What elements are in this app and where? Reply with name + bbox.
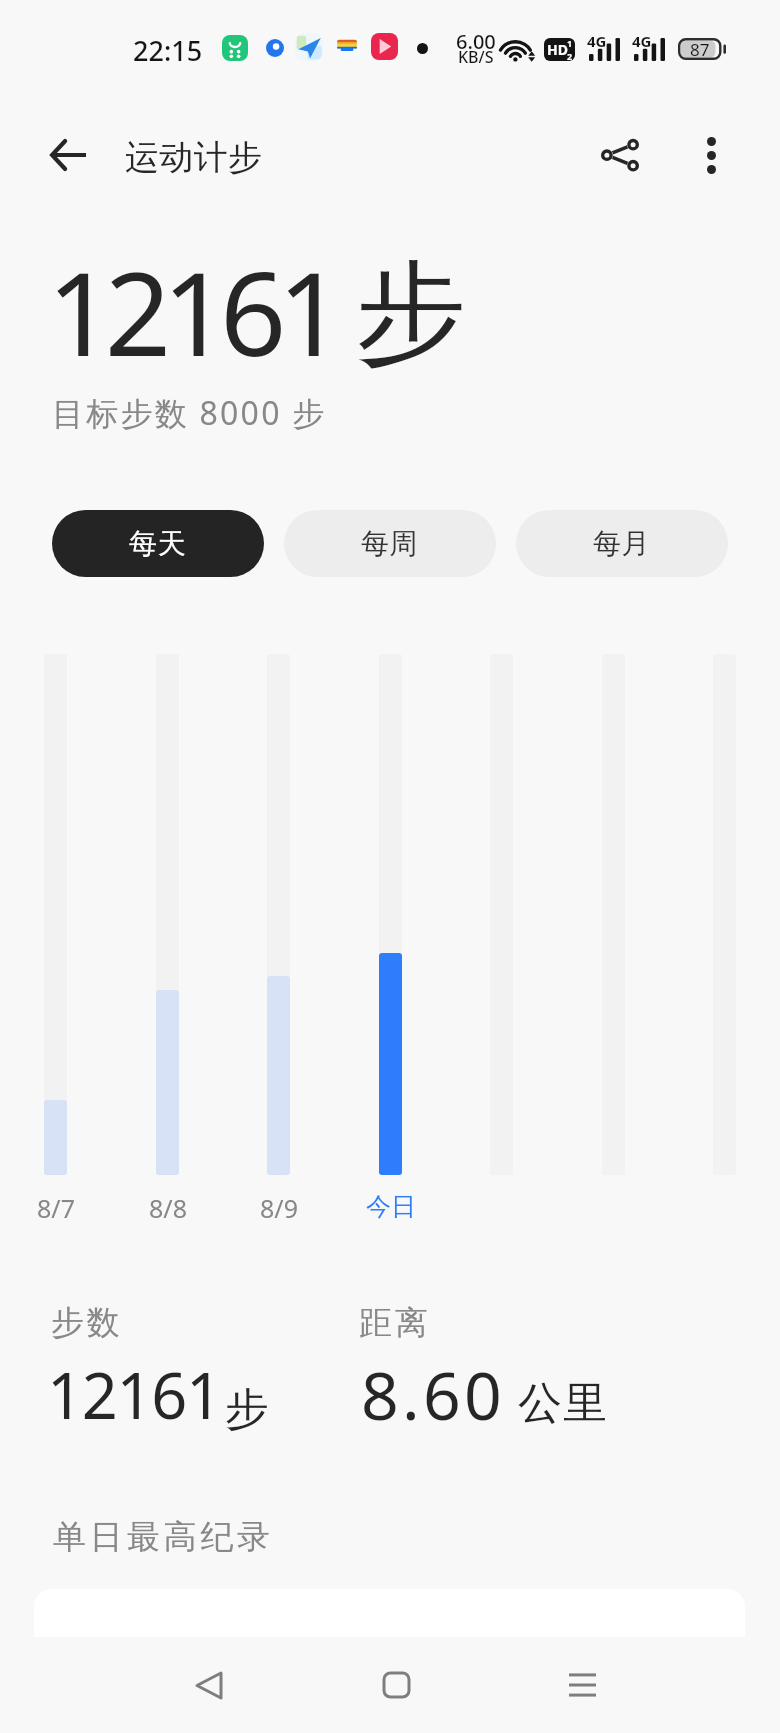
button[interactable]: Steps bar 8/7 bbox=[44, 654, 67, 1175]
button[interactable]: Home bbox=[351, 1640, 441, 1730]
button[interactable]: Back bbox=[23, 110, 113, 200]
staticText: 8/8 bbox=[149, 1191, 187, 1225]
staticText: 4G bbox=[587, 31, 607, 51]
staticText: 12161 bbox=[47, 232, 336, 390]
staticText: 今日 bbox=[366, 1191, 416, 1222]
button[interactable]: Steps bar 8/9 bbox=[267, 654, 290, 1175]
button[interactable]: 每天 bbox=[52, 510, 264, 577]
button[interactable]: 每月 bbox=[516, 510, 728, 577]
staticText: 步 bbox=[225, 1382, 269, 1437]
staticText: 步 bbox=[355, 244, 466, 384]
button[interactable]: 每周 bbox=[284, 510, 496, 577]
staticText: 1 bbox=[567, 38, 573, 49]
button[interactable]: More options bbox=[666, 110, 756, 200]
button[interactable]: Steps bar 8/8 bbox=[156, 654, 179, 1175]
staticText: HD bbox=[547, 40, 568, 59]
button[interactable]: Share bbox=[575, 110, 665, 200]
staticText: 22:15 bbox=[133, 32, 203, 69]
button[interactable]: Steps bar 今日 bbox=[379, 654, 402, 1175]
staticText: 6.00 bbox=[456, 28, 496, 55]
staticText: 每天 bbox=[129, 526, 187, 561]
staticText: KB/S bbox=[458, 46, 494, 68]
staticText: 每周 bbox=[361, 526, 419, 561]
staticText: 4G bbox=[632, 31, 652, 51]
staticText: 每月 bbox=[593, 526, 651, 561]
staticText: 公里 bbox=[518, 1376, 608, 1431]
staticText: 单日最高纪录 bbox=[53, 1516, 274, 1558]
staticText: 目标步数 8000 步 bbox=[52, 391, 327, 435]
staticText: 87 bbox=[690, 38, 710, 60]
staticText: 步数 bbox=[51, 1302, 123, 1344]
staticText: 距离 bbox=[359, 1302, 431, 1344]
staticText: 8/9 bbox=[260, 1191, 298, 1225]
staticText: 8/7 bbox=[37, 1191, 75, 1225]
button[interactable]: Recent apps bbox=[537, 1640, 627, 1730]
button[interactable]: Back bbox=[164, 1640, 254, 1730]
staticText: 2 bbox=[567, 50, 573, 61]
staticText: 运动计步 bbox=[125, 136, 263, 179]
staticText: 8.60 bbox=[361, 1349, 506, 1439]
staticText: 12161 bbox=[47, 1352, 221, 1438]
